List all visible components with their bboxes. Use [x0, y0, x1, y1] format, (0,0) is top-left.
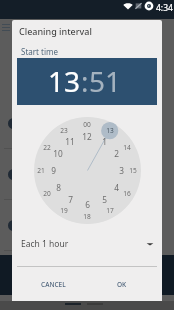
staticText: 10	[53, 148, 63, 159]
button[interactable]: 51	[89, 62, 122, 100]
button[interactable]: 5	[95, 192, 113, 206]
button[interactable]: 9	[44, 163, 62, 177]
staticText: 1	[102, 136, 107, 147]
button[interactable]: 10	[49, 146, 67, 160]
button[interactable]: 13	[101, 123, 119, 137]
staticText: 2	[114, 148, 119, 159]
staticText: 20	[43, 189, 51, 198]
button[interactable]: 17	[101, 203, 119, 217]
staticText: 7	[68, 194, 73, 205]
button[interactable]: 20	[38, 186, 56, 200]
other: Battery	[144, 1, 154, 11]
staticText: 5	[102, 194, 107, 205]
button[interactable]: 15	[124, 163, 142, 177]
staticText: 17	[106, 206, 114, 215]
staticText: CANCEL	[41, 280, 66, 289]
button[interactable]: 18	[78, 209, 96, 223]
button[interactable]: 19	[55, 203, 73, 217]
staticText: OK	[117, 280, 127, 289]
staticText: 4:34	[156, 2, 173, 14]
button[interactable]: 7	[61, 192, 79, 206]
button[interactable]: 13	[48, 62, 81, 100]
staticText: 15	[129, 166, 137, 175]
staticText: 22	[43, 143, 51, 152]
button[interactable]: OK	[109, 276, 135, 293]
staticText: 12	[82, 131, 92, 142]
button[interactable]: 14	[118, 140, 136, 154]
button[interactable]: 6	[78, 197, 96, 211]
other: Wi-Fi	[123, 2, 133, 10]
staticText: 00	[83, 120, 91, 129]
staticText: 8	[56, 182, 61, 193]
button[interactable]: 8	[49, 180, 67, 194]
button[interactable]: CANCEL	[36, 276, 70, 293]
staticText: 9	[51, 165, 56, 176]
button[interactable]: 4	[107, 180, 125, 194]
staticText: 21	[37, 166, 45, 175]
button[interactable]: 3	[112, 163, 130, 177]
staticText: 4	[114, 182, 119, 193]
button[interactable]: 21	[32, 163, 50, 177]
staticText: 23	[60, 126, 68, 135]
button[interactable]: 16	[118, 186, 136, 200]
button[interactable]: 2	[107, 146, 125, 160]
staticText: 19	[60, 206, 68, 215]
staticText: 14	[123, 143, 131, 152]
staticText: Cleaning interval	[19, 25, 92, 37]
staticText: :	[81, 62, 89, 100]
button[interactable]: 12	[78, 129, 96, 143]
staticText: 11	[65, 136, 75, 147]
other: No SIM card	[135, 2, 142, 9]
button[interactable]: Each 1 hour	[17, 232, 157, 256]
staticText: Start time	[21, 46, 58, 57]
button[interactable]: 1	[95, 134, 113, 148]
staticText: Each 1 hour	[21, 238, 69, 250]
button[interactable]: 11	[61, 134, 79, 148]
button[interactable]: 22	[38, 140, 56, 154]
staticText: 18	[83, 212, 91, 221]
button[interactable]: 00	[78, 117, 96, 131]
staticText: 13	[106, 126, 114, 135]
button[interactable]: 23	[55, 123, 73, 137]
staticText: 16	[123, 189, 131, 198]
staticText: 3	[119, 165, 124, 176]
staticText: 6	[85, 199, 90, 210]
button[interactable]: Start time	[17, 44, 157, 58]
